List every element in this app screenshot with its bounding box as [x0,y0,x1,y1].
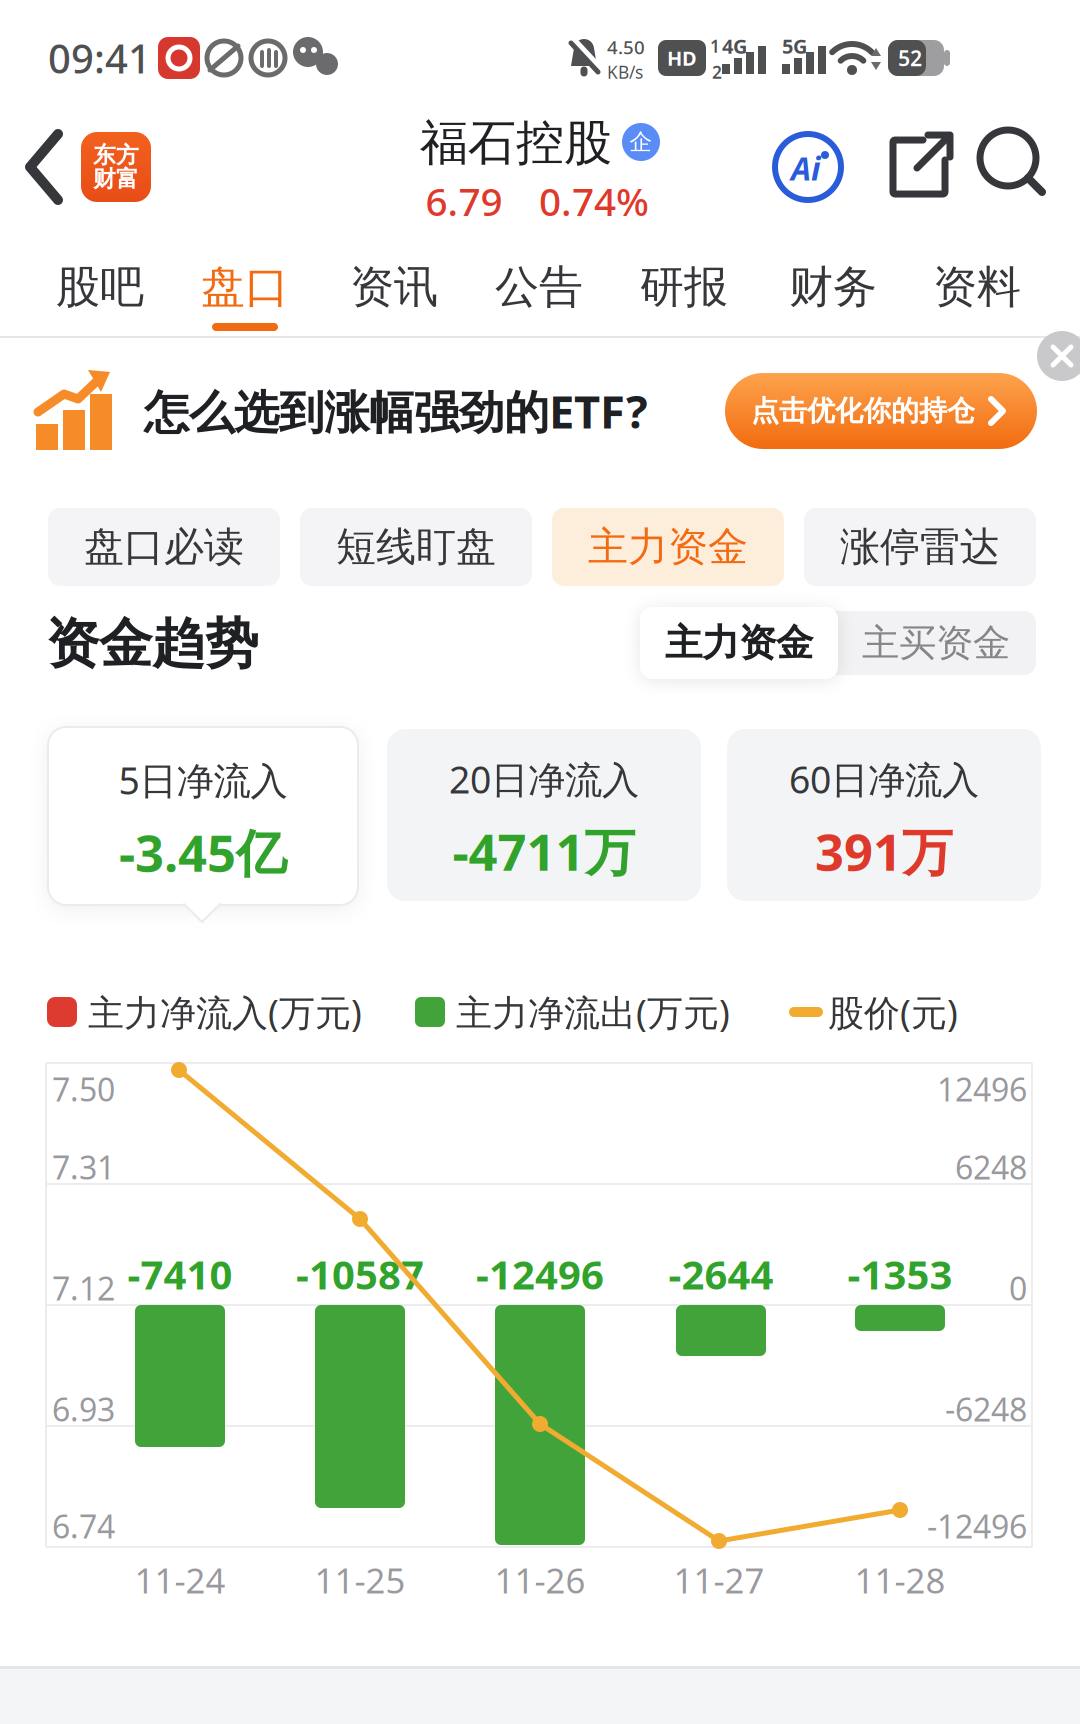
button[interactable]: 5日净流入 [48,727,358,905]
button[interactable]: 股吧 [30,239,170,335]
staticText: 盘口 [201,260,289,314]
button[interactable]: 资讯 [324,239,464,335]
staticText: KB/s [607,60,643,83]
staticText: -12496 [476,1247,604,1300]
button[interactable]: 20日净流入 [387,729,701,901]
button[interactable]: 资料 [907,239,1047,335]
staticText: 股吧 [56,260,144,314]
staticText: 11-25 [314,1557,405,1603]
button[interactable]: 盘口必读 [48,508,280,586]
staticText: 11-24 [134,1557,225,1603]
staticText: 7.31 [52,1146,115,1188]
staticText: 12496 [937,1068,1027,1110]
staticText: 短线盯盘 [336,522,496,571]
staticText: 东方 财富 [93,141,139,193]
staticText: 60日净流入 [789,754,979,804]
staticText: 5日净流入 [118,755,287,805]
button[interactable]: AI助手 [775,134,841,200]
staticText: 6248 [955,1146,1027,1188]
button[interactable]: 分享 [889,133,955,199]
button[interactable]: 主力资金 [552,508,784,586]
staticText: 11-27 [673,1557,764,1603]
staticText: 企 [629,128,652,156]
button[interactable]: 短线盯盘 [300,508,532,586]
staticText: 财务 [789,260,877,314]
staticText: 研报 [640,260,728,314]
staticText: 20日净流入 [449,754,639,804]
staticText: 52 [898,44,922,72]
staticText: -3.45亿 [119,818,287,886]
staticText: 主买资金 [862,620,1010,666]
staticText: 5G [782,33,807,59]
button[interactable]: 返回 [24,127,68,207]
staticText: 0.74% [539,175,649,227]
staticText: 0 [1009,1267,1027,1309]
button[interactable]: 关闭 [1037,331,1080,381]
staticText: 1 [710,34,720,57]
staticText: 4.50 [607,35,645,59]
staticText: 6.74 [52,1505,115,1547]
staticText: 6.79 [425,175,502,227]
staticText: 2 [712,60,722,83]
staticText: 主力资金 [588,522,748,571]
staticText: 涨停雷达 [840,522,1000,571]
button[interactable]: 盘口 [175,239,315,335]
staticText: -6248 [945,1388,1027,1430]
staticText: 点击优化你的持仓 [751,394,975,428]
button[interactable]: 主买资金 [841,611,1031,675]
staticText: -2644 [668,1247,773,1300]
staticText: HD [667,45,697,71]
button[interactable]: 60日净流入 [727,729,1041,901]
staticText: -12496 [927,1505,1027,1547]
staticText: 股价(元) [828,988,958,1036]
staticText: 资金趋势 [46,611,258,677]
staticText: 7.50 [52,1068,115,1110]
staticText: -4711万 [452,817,635,885]
staticText: 盘口必读 [84,522,244,571]
button[interactable]: 东方财富 [81,132,151,202]
button[interactable]: 点击优化你的持仓 [725,373,1037,449]
button[interactable]: 主力资金 [640,607,838,679]
button[interactable]: 涨停雷达 [804,508,1036,586]
staticText: 怎么选到涨幅强劲的ETF? [144,381,648,441]
staticText: 主力净流出(万元) [456,988,730,1036]
staticText: 4G [722,33,747,59]
staticText: -1353 [847,1247,952,1300]
button[interactable]: 搜索 [980,130,1046,196]
button[interactable]: 研报 [614,239,754,335]
staticText: 资讯 [350,260,438,314]
staticText: 主力资金 [665,620,813,666]
staticText: Ai [791,147,821,189]
staticText: 391万 [815,817,953,885]
staticText: 11-26 [494,1557,585,1603]
staticText: 11-28 [854,1557,945,1603]
staticText: 主力净流入(万元) [88,988,362,1036]
staticText: 6.93 [52,1388,115,1430]
staticText: -7410 [127,1247,232,1300]
staticText: 公告 [495,260,583,314]
button[interactable]: 财务 [763,239,903,335]
staticText: 7.12 [52,1267,115,1309]
staticText: -10587 [296,1247,424,1300]
staticText: 福石控股 [420,113,612,172]
staticText: 09:41 [48,31,151,84]
staticText: 资料 [933,260,1021,314]
button[interactable]: 公告 [469,239,609,335]
